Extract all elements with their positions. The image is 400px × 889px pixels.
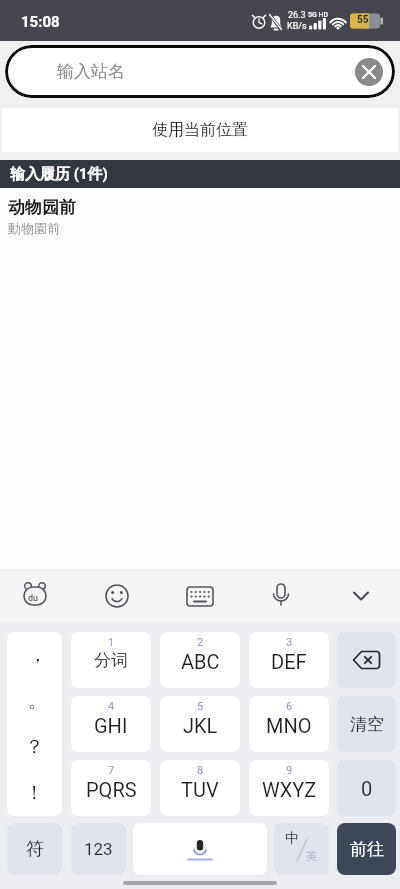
button[interactable]: 0 xyxy=(337,760,396,816)
button[interactable] xyxy=(178,574,222,618)
staticText: ！ xyxy=(25,781,44,805)
staticText: 6 xyxy=(286,700,293,713)
staticText: TUV xyxy=(181,778,219,801)
staticText: 清空 xyxy=(350,714,384,735)
button[interactable] xyxy=(95,574,139,618)
button[interactable]: 使用当前位置 xyxy=(2,108,398,152)
button[interactable]: ， xyxy=(7,632,62,816)
button[interactable] xyxy=(339,574,383,618)
staticText: 8 xyxy=(197,764,204,777)
button[interactable]: 2 xyxy=(160,632,240,688)
staticText: KB/s xyxy=(287,21,307,32)
staticText: 符 xyxy=(26,838,44,861)
staticText: 输入站名 xyxy=(57,61,125,82)
staticText: 4 xyxy=(108,700,115,713)
staticText: 3 xyxy=(286,636,293,649)
staticText: 输入履历 (1件) xyxy=(10,165,108,184)
button[interactable] xyxy=(13,574,57,618)
staticText: 2 xyxy=(197,636,204,649)
button[interactable] xyxy=(355,58,383,86)
button[interactable]: 8 xyxy=(160,760,240,816)
staticText: 26.3 xyxy=(288,10,306,21)
staticText: ， xyxy=(28,643,47,667)
staticText: 前往 xyxy=(350,839,384,860)
button[interactable]: 前往 xyxy=(337,823,396,875)
staticText: JKL xyxy=(183,714,218,737)
staticText: 9 xyxy=(286,764,293,777)
staticText: 英 xyxy=(306,849,317,863)
button[interactable]: 9 xyxy=(249,760,329,816)
button[interactable] xyxy=(133,823,267,875)
staticText: 動物園前 xyxy=(8,220,60,236)
staticText: 使用当前位置 xyxy=(152,120,248,140)
staticText: 0 xyxy=(361,777,373,800)
staticText: 动物园前 xyxy=(8,197,76,218)
button[interactable]: 符 xyxy=(7,823,62,875)
staticText: 55 xyxy=(357,14,369,26)
button[interactable]: 7 xyxy=(71,760,151,816)
button[interactable]: 6 xyxy=(249,696,329,752)
button[interactable]: 1 xyxy=(71,632,151,688)
staticText: PQRS xyxy=(86,778,137,801)
staticText: ？ xyxy=(25,735,44,759)
staticText: 7 xyxy=(108,764,115,777)
staticText: 。 xyxy=(28,689,47,713)
staticText: GHI xyxy=(94,714,128,737)
staticText: ABC xyxy=(181,650,220,673)
button[interactable]: 中 xyxy=(274,823,329,875)
button[interactable] xyxy=(259,574,303,618)
button[interactable]: 4 xyxy=(71,696,151,752)
staticText: 分词 xyxy=(94,650,128,671)
button[interactable]: 清空 xyxy=(337,696,396,752)
button[interactable]: 输入站名 xyxy=(5,45,395,98)
button[interactable]: 3 xyxy=(249,632,329,688)
button[interactable]: 123 xyxy=(71,823,126,875)
button[interactable]: 5 xyxy=(160,696,240,752)
staticText: du xyxy=(28,593,39,604)
staticText: 5 xyxy=(197,700,204,713)
staticText: 中 xyxy=(285,830,299,848)
staticText: 1 xyxy=(108,636,115,649)
staticText: 5G HD xyxy=(308,11,329,19)
button[interactable] xyxy=(337,632,396,688)
staticText: 15:08 xyxy=(21,13,60,31)
staticText: WXYZ xyxy=(262,778,317,801)
button[interactable]: 动物园前 xyxy=(8,197,76,236)
staticText: MNO xyxy=(266,714,312,737)
staticText: 123 xyxy=(84,839,113,859)
staticText: DEF xyxy=(271,650,307,673)
